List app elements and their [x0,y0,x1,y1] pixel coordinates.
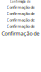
staticText: Confirmação de [6,17,34,22]
staticText: Confirmação de [10,0,31,3]
staticText: Confirmação de [6,4,34,10]
staticText: Confirmação de [1,30,39,37]
staticText: Confirmação de [6,11,34,16]
staticText: Confirmação de [6,23,34,29]
